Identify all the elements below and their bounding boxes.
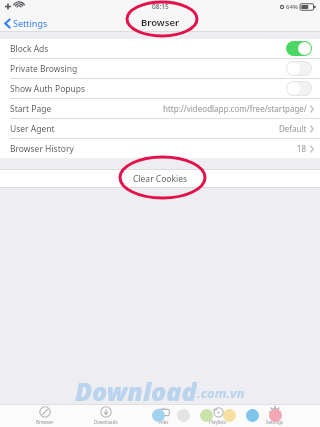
button[interactable]: Off [286,61,312,76]
staticText: .com.vn [197,384,245,402]
staticText: Private Browsing [10,63,286,75]
button[interactable]: Clear Cookies [0,169,320,188]
staticText: Downloads [94,419,118,425]
staticText: Start Page [10,103,52,115]
staticText: 08:15 [152,2,169,11]
staticText: User Agent [10,123,55,135]
button[interactable]: Settings [0,15,54,31]
button[interactable]: Show Auth Popups [0,79,320,98]
staticText: Block Ads [10,43,286,55]
button[interactable]: Files [154,405,174,426]
staticText: 18 [297,143,307,154]
staticText: Files [159,419,169,425]
staticText: Show Auth Popups [10,83,286,95]
button[interactable]: Off [286,81,312,96]
staticText: Settings [266,419,284,425]
staticText: Clear Cookies [133,173,188,185]
staticText: http://videodlapp.com/free/startpage/ [163,103,307,114]
button[interactable]: Playlists [205,405,230,426]
staticText: Playlists [209,419,226,425]
staticText: Default [279,123,307,134]
staticText: Settings [13,17,48,29]
button[interactable]: Downloads [90,405,122,426]
button[interactable]: Settings [262,405,288,426]
button[interactable]: Browser History [0,139,320,158]
staticText: Download [75,374,197,404]
button[interactable]: Browser [32,405,58,426]
staticText: Browser [141,16,180,29]
staticText: 64% [286,3,298,11]
button[interactable]: Start Page [0,99,320,118]
button[interactable]: Private Browsing [0,59,320,78]
button[interactable]: On [286,41,312,56]
staticText: Browser [36,419,54,425]
button[interactable]: Block Ads [0,39,320,58]
staticText: Browser History [10,143,74,155]
button[interactable]: User Agent [0,119,320,138]
